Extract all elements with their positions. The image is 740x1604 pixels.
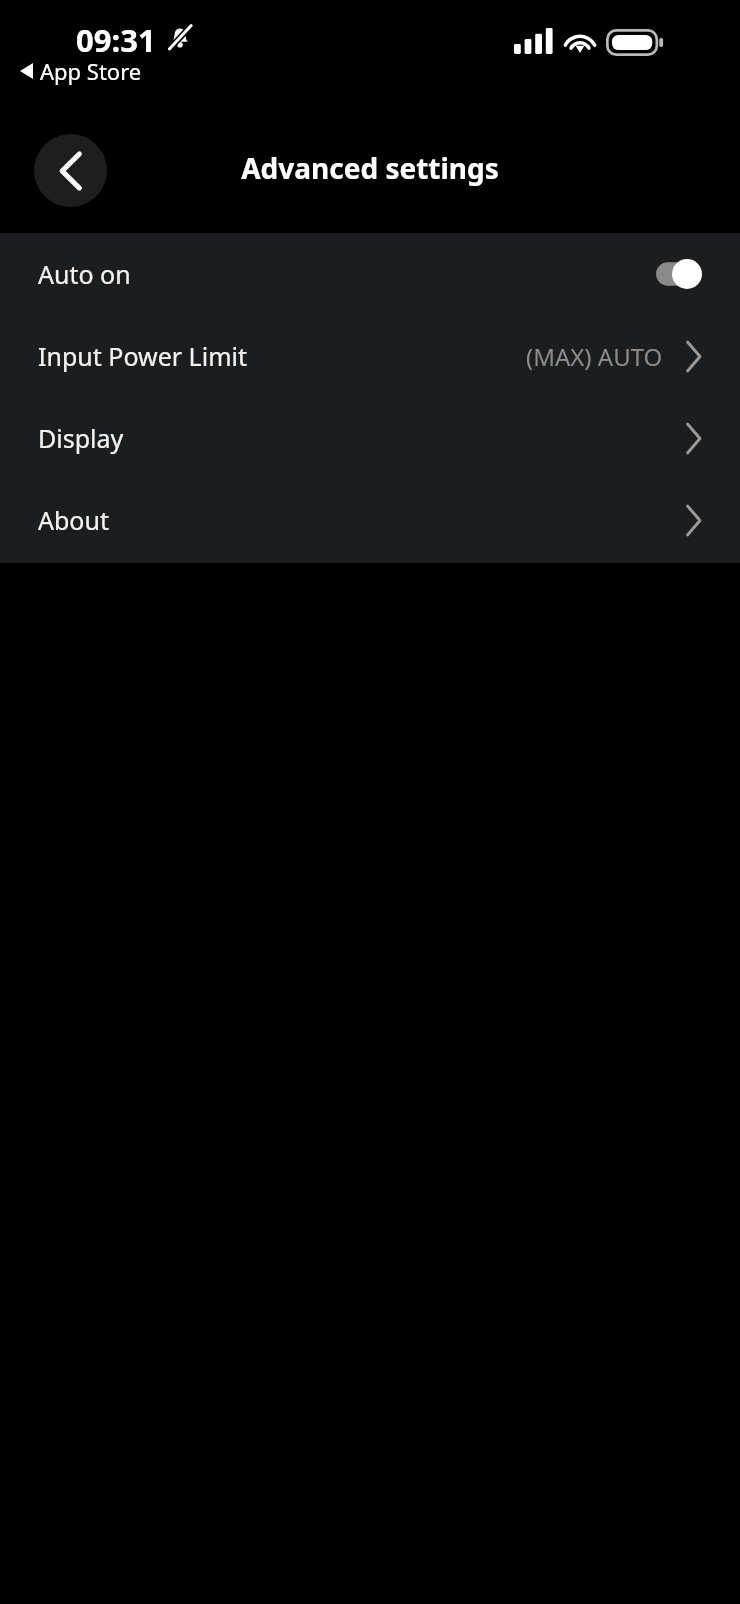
- button[interactable]: App Store: [20, 56, 142, 86]
- button[interactable]: Auto on: [0, 233, 740, 315]
- staticText: App Store: [40, 56, 142, 86]
- button[interactable]: Back: [34, 134, 107, 207]
- staticText: (MAX) AUTO: [526, 340, 663, 373]
- staticText: Advanced settings: [0, 149, 740, 187]
- other: Open: [685, 424, 702, 453]
- staticText: Input Power Limit: [38, 339, 248, 373]
- staticText: Auto on: [38, 257, 131, 291]
- staticText: Display: [38, 421, 124, 455]
- button[interactable]: Display: [0, 397, 740, 479]
- other: Open: [685, 506, 702, 535]
- other: Open: [685, 342, 702, 371]
- button[interactable]: Input Power Limit: [0, 315, 740, 397]
- button[interactable]: Auto on toggle: [656, 259, 702, 289]
- button[interactable]: About: [0, 479, 740, 561]
- staticText: About: [38, 503, 109, 537]
- staticText: 09:31: [76, 19, 156, 61]
